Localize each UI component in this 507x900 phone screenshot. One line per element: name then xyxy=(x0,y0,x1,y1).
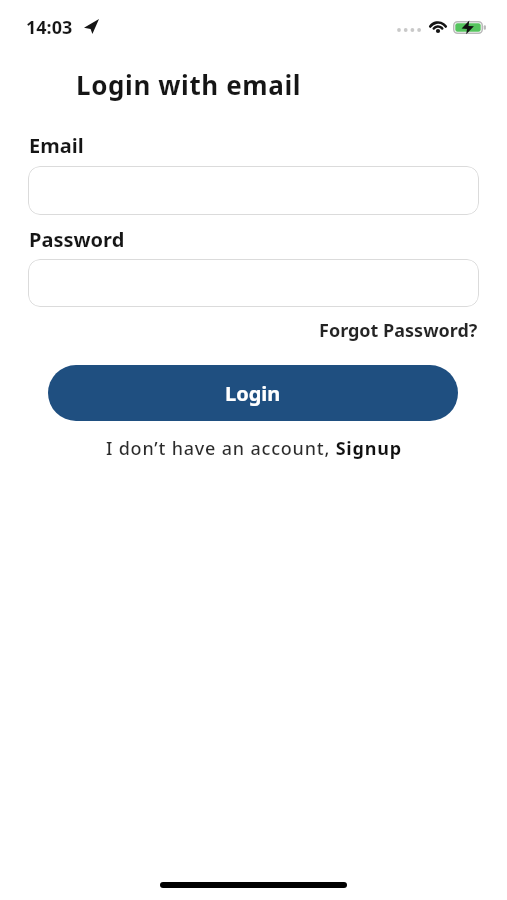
staticText: Password xyxy=(29,226,125,253)
button[interactable] xyxy=(28,166,479,215)
button[interactable]: I don’t have an account, Signup xyxy=(106,436,402,461)
staticText: 14:03 xyxy=(26,15,73,40)
button[interactable] xyxy=(28,259,479,307)
button[interactable]: Login xyxy=(48,365,458,421)
button[interactable]: Forgot Password? xyxy=(319,318,478,343)
staticText: Login with email xyxy=(76,67,302,102)
staticText: Login xyxy=(225,380,281,407)
staticText: Email xyxy=(29,132,84,159)
